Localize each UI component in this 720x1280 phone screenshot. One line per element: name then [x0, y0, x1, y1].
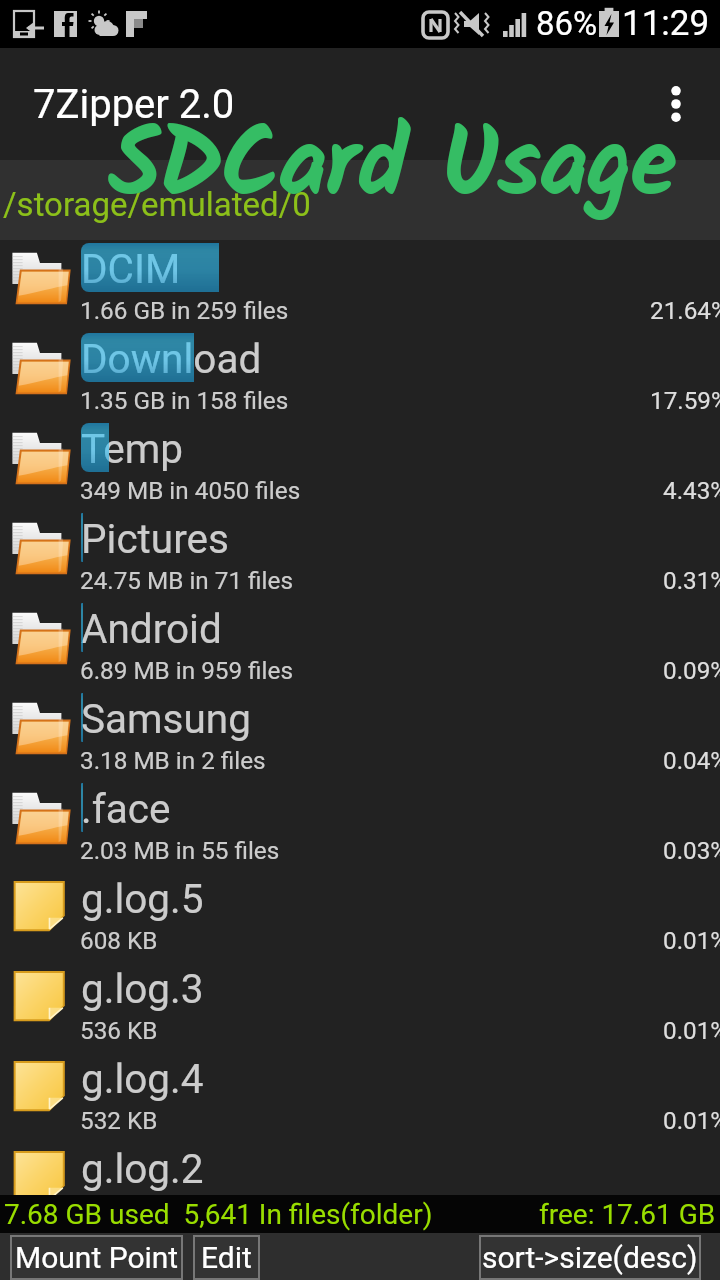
button[interactable]: sort->size(desc)	[479, 1235, 701, 1280]
staticText: g.log.2	[81, 1145, 204, 1192]
staticText: Pictures	[81, 515, 229, 562]
button[interactable]: g.log.5	[0, 870, 720, 960]
staticText: 24.75 MB in 71 files	[80, 566, 293, 594]
staticText: g.log.3	[81, 965, 204, 1012]
staticText: 608 KB	[80, 926, 158, 954]
staticText: 0.01%	[663, 1106, 720, 1134]
button[interactable]: Download	[0, 330, 720, 420]
staticText: DCIM	[81, 245, 181, 292]
staticText: 11:29	[622, 3, 710, 44]
staticText: 2.03 MB in 55 files	[80, 836, 280, 864]
staticText: free: 17.61 GB	[539, 1198, 716, 1231]
staticText: SDCard Usage	[108, 92, 675, 247]
staticText: Temp	[81, 425, 183, 472]
button[interactable]: Mount Point	[10, 1235, 183, 1280]
button[interactable]: g.log.3	[0, 960, 720, 1050]
staticText: 7Zipper 2.0	[33, 81, 235, 128]
staticText: g.log.4	[81, 1055, 204, 1102]
staticText: Edit	[201, 1240, 252, 1275]
staticText: 0.04%	[663, 746, 720, 774]
staticText: 17.59%	[650, 386, 720, 414]
button[interactable]: Pictures	[0, 510, 720, 600]
staticText: 0.31%	[663, 566, 720, 594]
staticText: 536 KB	[80, 1016, 158, 1044]
staticText: Download	[81, 335, 262, 382]
staticText: 6.89 MB in 959 files	[80, 656, 293, 684]
staticText: Mount Point	[15, 1240, 179, 1275]
button[interactable]: DCIM	[0, 240, 720, 330]
staticText: 86%	[536, 4, 598, 43]
staticText: 0.01%	[663, 1016, 720, 1044]
staticText: Samsung	[81, 695, 251, 742]
button[interactable]: Edit	[193, 1235, 260, 1280]
staticText: /storage/emulated/0	[3, 185, 311, 224]
staticText: 3.18 MB in 2 files	[80, 746, 266, 774]
button[interactable]: Android	[0, 600, 720, 690]
staticText: 0.03%	[663, 836, 720, 864]
staticText: 4.43%	[663, 476, 720, 504]
button[interactable]: Samsung	[0, 690, 720, 780]
button[interactable]: .face	[0, 780, 720, 870]
staticText: .face	[81, 785, 171, 832]
staticText: 0.09%	[663, 656, 720, 684]
staticText: 7.68 GB used 5,641 In files(folder)	[4, 1198, 433, 1231]
staticText: 1.35 GB in 158 files	[80, 386, 289, 414]
button[interactable]: Temp	[0, 420, 720, 510]
staticText: 1.66 GB in 259 files	[80, 296, 289, 324]
button[interactable]: g.log.2	[0, 1140, 720, 1195]
staticText: Android	[81, 605, 222, 652]
button[interactable]: g.log.4	[0, 1050, 720, 1140]
staticText: sort->size(desc)	[482, 1240, 698, 1275]
staticText: 349 MB in 4050 files	[80, 476, 301, 504]
staticText: 21.64%	[650, 296, 720, 324]
staticText: 0.01%	[663, 926, 720, 954]
staticText: g.log.5	[81, 875, 204, 922]
button[interactable]: More options	[646, 48, 706, 160]
staticText: 532 KB	[80, 1106, 158, 1134]
